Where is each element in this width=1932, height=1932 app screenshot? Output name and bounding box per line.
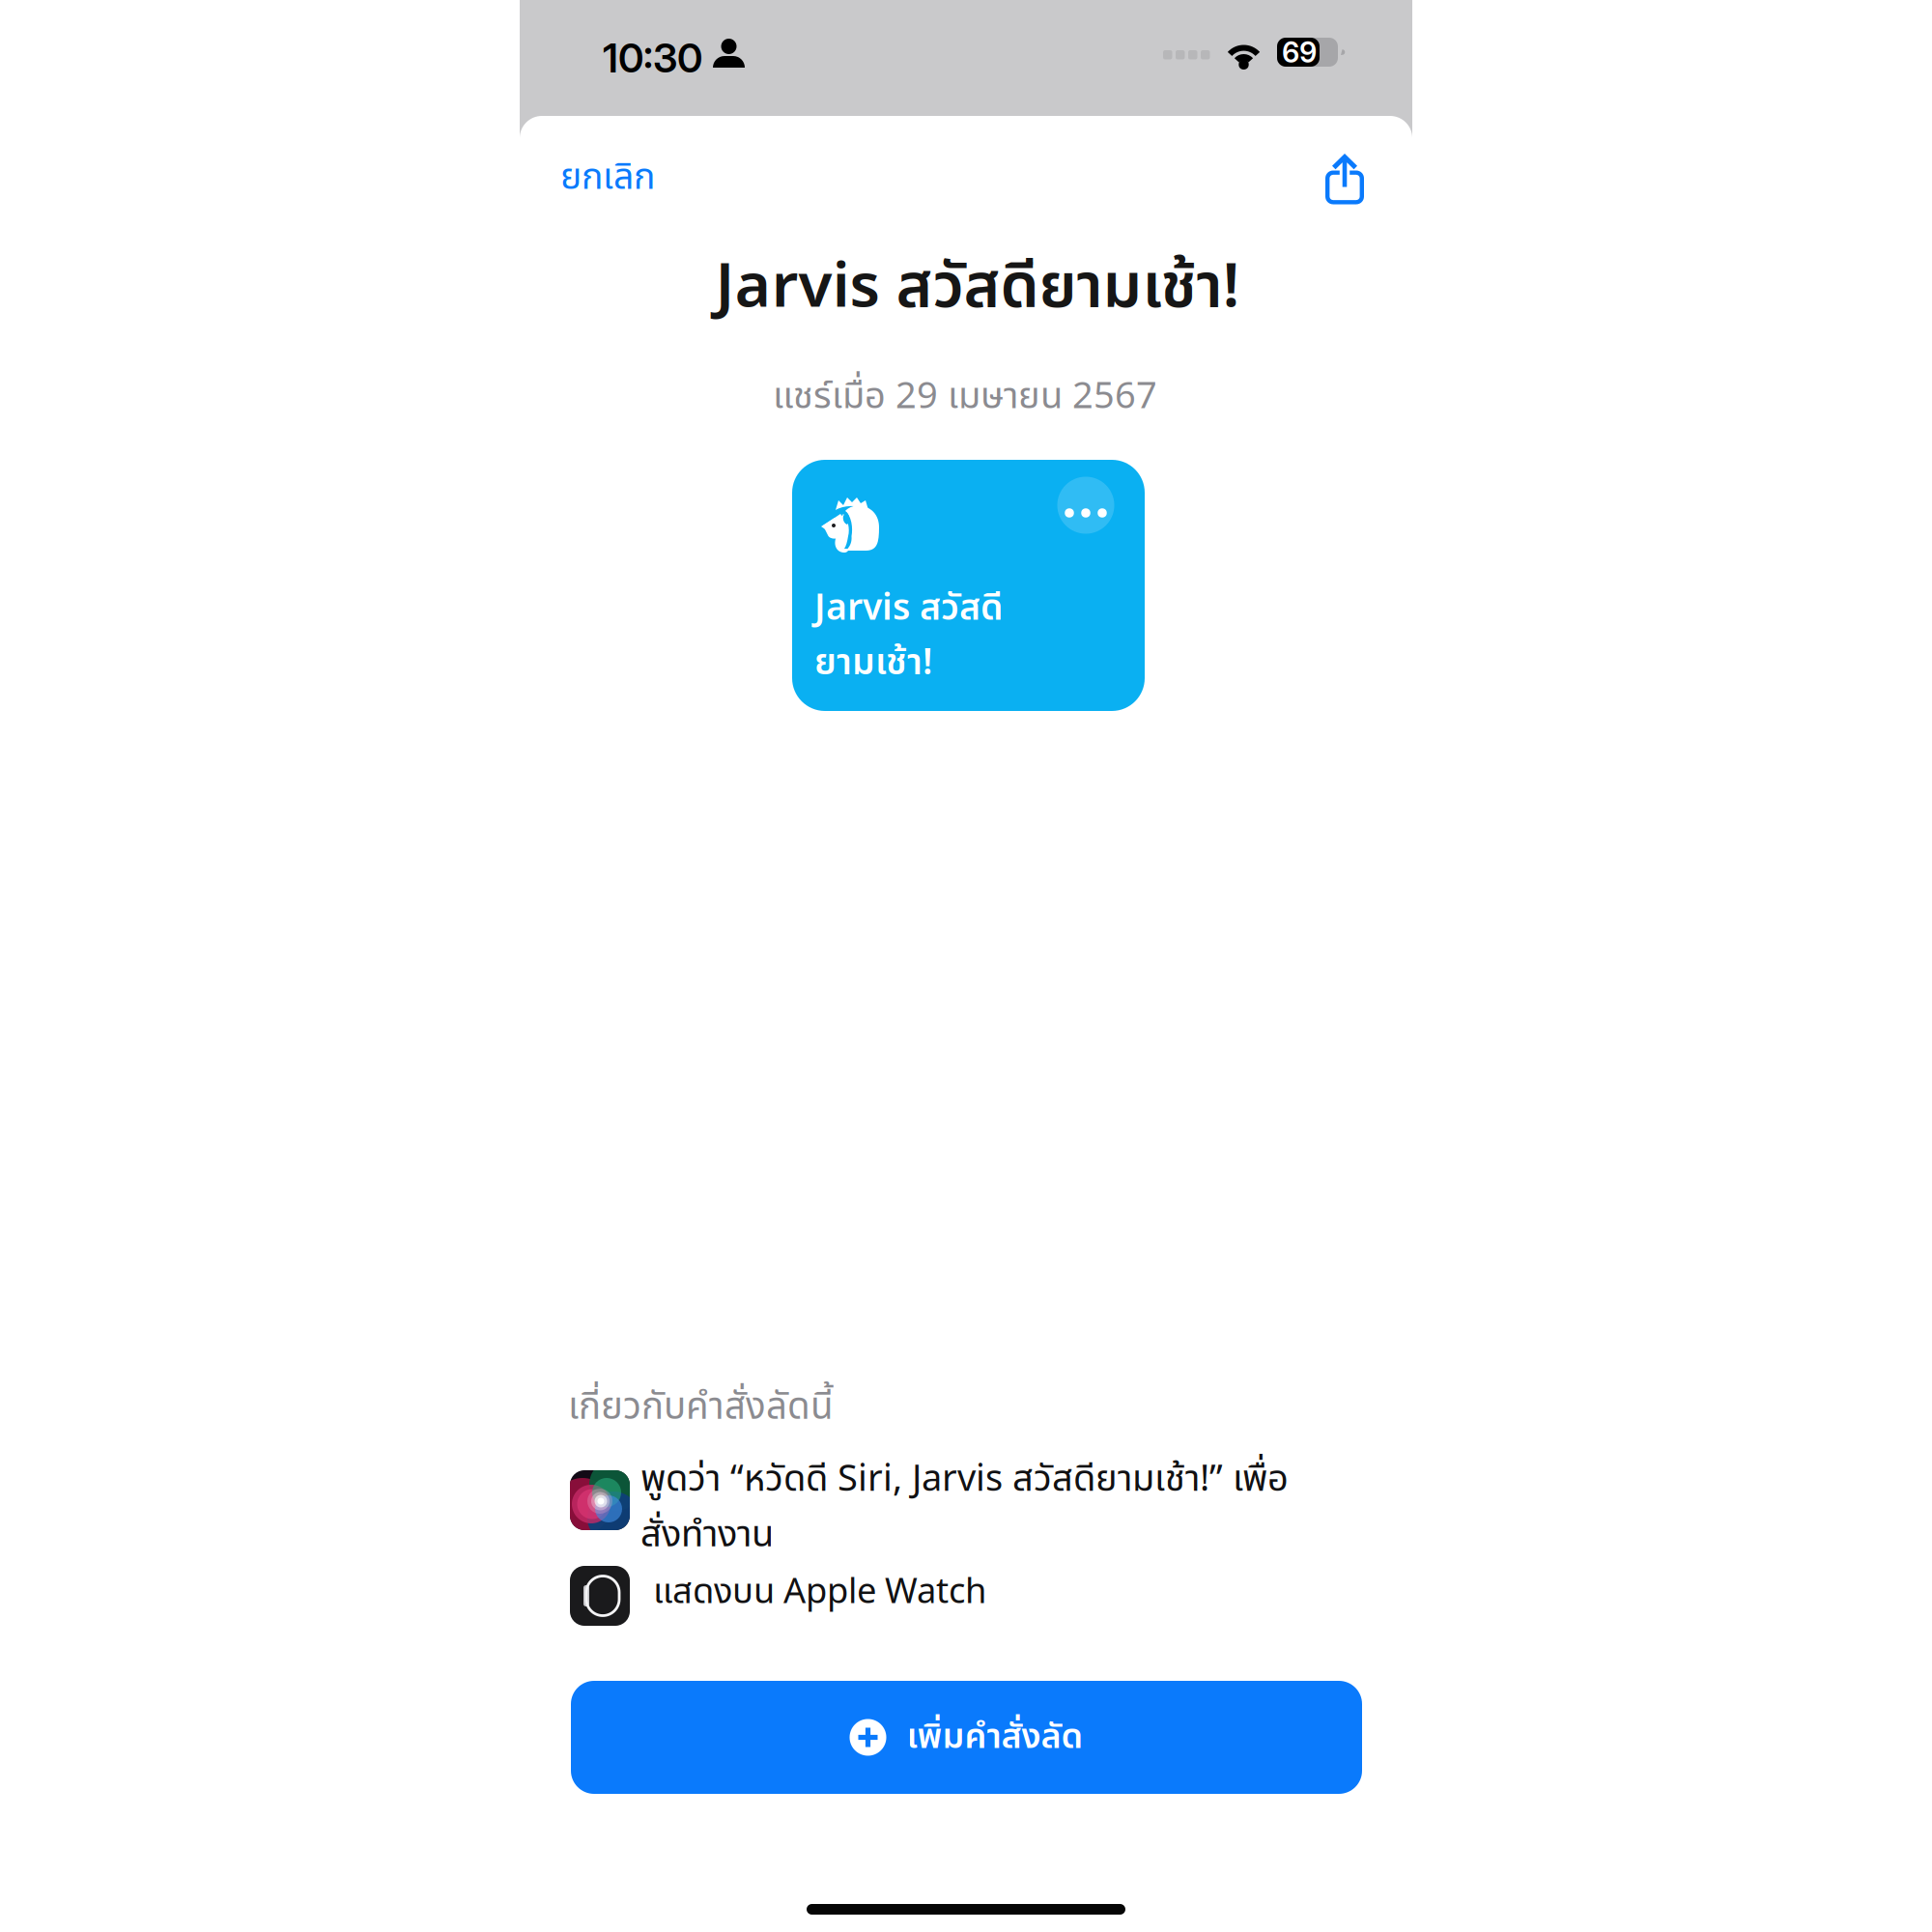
staticText: Jarvis สวัสดียามเช้า! — [715, 241, 1240, 335]
staticText: Jarvis สวัสดี ยามเช้า! — [814, 582, 1003, 690]
button[interactable]: เพิ่มคำสั่งลัด — [571, 1681, 1362, 1794]
staticText: เกี่ยวกับคำสั่งลัดนี้ — [568, 1379, 834, 1435]
staticText: ยกเลิก — [560, 151, 655, 205]
button[interactable]: ยกเลิก — [547, 144, 680, 212]
staticText: แสดงบน Apple Watch — [653, 1566, 986, 1619]
staticText: 69 — [1282, 35, 1317, 69]
button[interactable]: Share — [1306, 143, 1383, 214]
staticText: 10:30 — [603, 34, 702, 82]
staticText: เพิ่มคำสั่งลัด — [907, 1711, 1083, 1764]
button[interactable]: Jarvis สวัสดี ยามเช้า! — [792, 460, 1145, 711]
staticText: พูดว่า “หวัดดี Siri, Jarvis สวัสดียามเช้… — [640, 1452, 1289, 1563]
button[interactable]: More options — [1056, 475, 1116, 535]
staticText: แชร์เมื่อ 29 เมษายน 2567 — [773, 369, 1157, 425]
